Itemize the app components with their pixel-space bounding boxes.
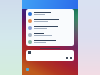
button[interactable]	[26, 24, 74, 31]
button[interactable]	[26, 38, 74, 45]
button[interactable]	[26, 31, 74, 38]
button[interactable]	[26, 17, 74, 24]
button[interactable]	[26, 10, 74, 17]
